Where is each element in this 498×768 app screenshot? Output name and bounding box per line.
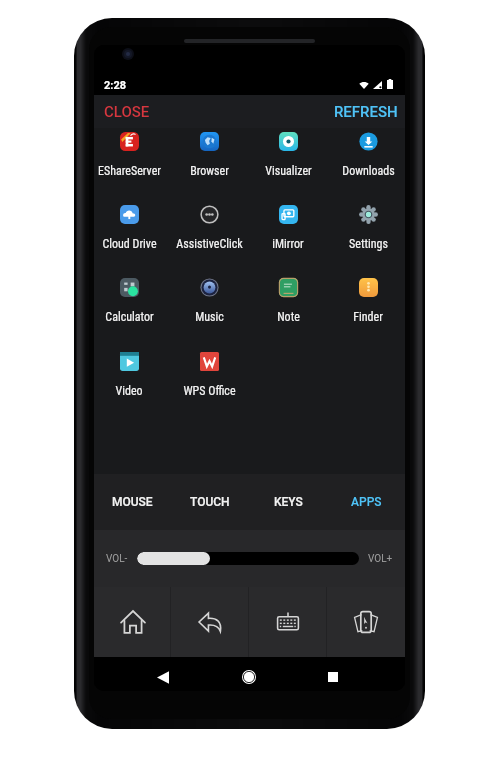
button[interactable]: Video	[94, 348, 165, 421]
button[interactable]: Music	[173, 274, 245, 347]
button[interactable]: WPS Office	[173, 348, 245, 421]
button[interactable]: Browser	[173, 128, 245, 201]
button[interactable]: KEYS	[249, 474, 327, 530]
staticText: Visualizer	[265, 164, 312, 178]
staticText: REFRESH	[334, 103, 398, 121]
staticText: AssistiveClick	[176, 237, 243, 251]
staticText: Downloads	[342, 164, 395, 178]
button[interactable]: EShareServer	[94, 128, 165, 201]
button[interactable]: TOUCH	[171, 474, 249, 530]
button[interactable]: iMirror	[252, 201, 324, 274]
button[interactable]: Home	[237, 665, 261, 689]
staticText: VOL+	[368, 553, 393, 565]
staticText: APPS	[351, 495, 382, 509]
button[interactable]: Calculator	[94, 274, 165, 347]
button[interactable]: Back	[151, 665, 175, 689]
staticText: TOUCH	[190, 495, 230, 509]
staticText: MOUSE	[112, 495, 153, 509]
staticText: 2:28	[104, 79, 127, 92]
button[interactable]: REFRESH	[324, 96, 405, 128]
button[interactable]: Recent apps	[327, 587, 405, 657]
staticText: iMirror	[272, 237, 304, 251]
staticText: Note	[277, 310, 300, 324]
button[interactable]: AssistiveClick	[173, 201, 245, 274]
staticText: KEYS	[274, 495, 303, 509]
staticText: Calculator	[105, 310, 154, 324]
staticText: Cloud Drive	[102, 237, 157, 251]
button[interactable]: Finder	[332, 274, 404, 347]
staticText: VOL-	[106, 553, 128, 565]
button[interactable]: Back	[171, 587, 249, 657]
button[interactable]: CLOSE	[94, 96, 160, 128]
staticText: Music	[195, 310, 224, 324]
staticText: WPS Office	[183, 384, 236, 398]
button[interactable]: Home	[94, 587, 171, 657]
button[interactable]: Note	[252, 274, 324, 347]
button[interactable]: APPS	[327, 474, 405, 530]
staticText: CLOSE	[104, 103, 150, 121]
staticText: Settings	[349, 237, 388, 251]
button[interactable]: Keyboard	[249, 587, 327, 657]
staticText: Finder	[353, 310, 383, 324]
button[interactable]: MOUSE	[94, 474, 171, 530]
button[interactable]: Cloud Drive	[94, 201, 165, 274]
button[interactable]: Visualizer	[252, 128, 324, 201]
button[interactable]: Recents	[321, 665, 345, 689]
staticText: EShareServer	[98, 164, 161, 178]
button[interactable]: Settings	[332, 201, 404, 274]
button[interactable]	[137, 552, 359, 565]
button[interactable]: Downloads	[332, 128, 404, 201]
staticText: Browser	[190, 164, 229, 178]
staticText: Video	[115, 384, 143, 398]
